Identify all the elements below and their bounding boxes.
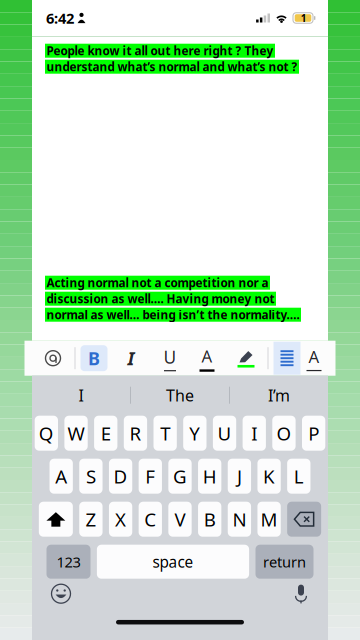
button[interactable]: I’m — [230, 376, 328, 415]
staticText: A — [201, 345, 212, 367]
staticText: Acting normal not a competition nor a — [46, 275, 268, 291]
button[interactable]: A — [49, 459, 73, 494]
button[interactable]: Shift — [39, 502, 73, 537]
button[interactable]: Q — [35, 416, 58, 451]
button[interactable]: D — [109, 459, 132, 494]
staticText: understand what’s normal and what’s not … — [46, 59, 297, 75]
button[interactable]: V — [168, 502, 192, 537]
staticText: I — [251, 420, 257, 446]
staticText: return — [263, 552, 306, 572]
button[interactable]: T — [153, 416, 177, 451]
button[interactable]: The — [131, 376, 229, 415]
button[interactable]: I — [243, 416, 266, 451]
staticText: L — [294, 463, 304, 489]
button[interactable]: Text colour — [193, 345, 220, 371]
button[interactable]: Alignment — [273, 342, 300, 375]
staticText: D — [114, 463, 128, 489]
button[interactable]: Emoji — [48, 581, 74, 607]
button[interactable]: space — [97, 545, 249, 579]
button[interactable]: Z — [79, 502, 102, 537]
button[interactable]: K — [257, 459, 281, 494]
button[interactable]: O — [272, 416, 296, 451]
button[interactable]: Highlight — [232, 345, 259, 371]
staticText: Q — [39, 420, 54, 446]
staticText: Y — [189, 420, 200, 446]
staticText: A — [55, 463, 67, 489]
button[interactable]: G — [168, 459, 192, 494]
staticText: normal as well… being isn’t the normalit… — [46, 307, 299, 323]
staticText: Z — [85, 506, 96, 532]
button[interactable]: 123 — [46, 545, 90, 579]
button[interactable]: H — [198, 459, 221, 494]
staticText: P — [308, 420, 319, 446]
staticText: S — [86, 463, 96, 489]
button[interactable]: Underline — [156, 345, 183, 371]
button[interactable]: M — [257, 502, 281, 537]
button[interactable]: I — [32, 376, 130, 415]
staticText: 6:42 — [46, 8, 74, 28]
button[interactable]: return — [255, 545, 313, 579]
staticText: K — [263, 463, 275, 489]
staticText: J — [237, 463, 242, 489]
staticText: People know it all out here right ? They — [46, 43, 273, 59]
staticText: discussion as well…. Having money not — [46, 291, 274, 307]
staticText: E — [101, 420, 111, 446]
staticText: B — [204, 506, 216, 532]
button[interactable]: C — [139, 502, 162, 537]
staticText: I — [78, 384, 83, 406]
staticText: R — [129, 420, 141, 446]
staticText: F — [145, 463, 155, 489]
button[interactable]: S — [79, 459, 102, 494]
staticText: G — [173, 463, 187, 489]
staticText: space — [152, 551, 193, 572]
button[interactable]: R — [124, 416, 147, 451]
staticText: M — [261, 506, 278, 532]
button[interactable]: Italic — [117, 345, 144, 371]
staticText: U — [163, 345, 176, 369]
button[interactable]: Font — [300, 345, 327, 371]
staticText: U — [217, 420, 231, 446]
staticText: A — [308, 345, 319, 368]
button[interactable]: J — [228, 459, 251, 494]
staticText: T — [160, 420, 170, 446]
staticText: The — [166, 384, 194, 406]
button[interactable]: P — [302, 416, 325, 451]
staticText: 123 — [56, 552, 80, 572]
staticText: C — [144, 506, 156, 532]
button[interactable]: L — [287, 459, 310, 494]
button[interactable]: Y — [183, 416, 206, 451]
button[interactable]: Bold — [80, 345, 107, 371]
button[interactable]: X — [109, 502, 132, 537]
staticText: X — [115, 506, 126, 532]
button[interactable]: E — [94, 416, 117, 451]
button[interactable]: B — [198, 502, 221, 537]
button[interactable]: W — [64, 416, 88, 451]
staticText: 1 — [301, 11, 307, 25]
button[interactable]: Dictation — [290, 581, 312, 607]
button[interactable]: Delete — [287, 502, 321, 537]
staticText: N — [232, 506, 246, 532]
button[interactable]: U — [213, 416, 236, 451]
staticText: I — [127, 346, 134, 370]
button[interactable]: N — [228, 502, 251, 537]
staticText: V — [174, 506, 185, 532]
button[interactable]: Mention — [38, 342, 67, 375]
staticText: O — [276, 420, 291, 446]
staticText: I’m — [268, 384, 290, 406]
button[interactable]: F — [139, 459, 162, 494]
staticText: H — [203, 463, 217, 489]
staticText: W — [67, 420, 84, 446]
staticText: B — [88, 346, 100, 370]
